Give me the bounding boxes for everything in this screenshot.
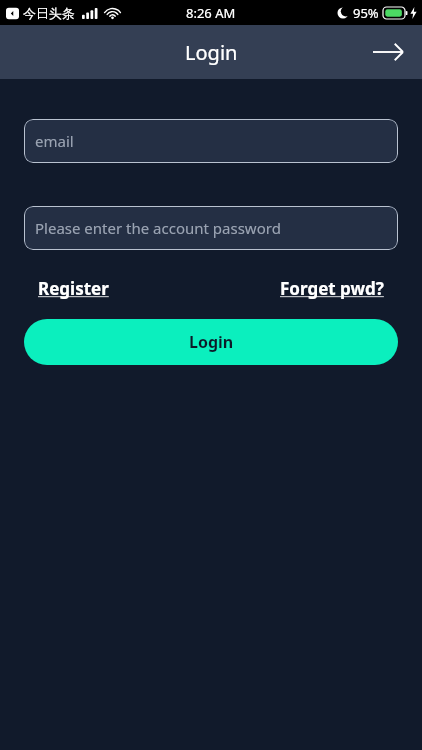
staticText: Login [189,331,234,353]
staticText: Register [38,277,109,300]
button[interactable]: Next [370,34,406,70]
staticText: 95% [353,4,379,22]
button[interactable]: Register [38,275,109,302]
staticText: Please enter the account password [35,218,281,238]
button[interactable]: Please enter the account password [24,206,398,250]
button[interactable]: Login [24,319,398,365]
staticText: 8:26 AM [186,4,236,22]
staticText: 今日头条 [23,5,75,21]
staticText: Forget pwd? [280,277,384,300]
staticText: Login [185,39,238,66]
staticText: email [35,131,74,151]
button[interactable]: email [24,119,398,163]
button[interactable]: Forget pwd? [280,275,384,302]
